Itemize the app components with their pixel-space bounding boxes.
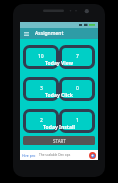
button[interactable]: 2 [23,109,59,133]
staticText: 1 [76,117,79,124]
button[interactable]: 0 [59,77,95,101]
button[interactable]: 3 [23,77,59,101]
button[interactable]: START [23,136,95,145]
staticText: Assignment [35,30,64,37]
staticText: 3 [40,85,43,92]
button[interactable]: 10 [23,45,59,69]
staticText: 10 [38,53,44,60]
staticText: START [53,138,66,144]
staticText: Today Install [43,124,75,131]
staticText: 0 [76,85,79,92]
button[interactable]: 7 [59,45,95,69]
staticText: Hire pro [22,153,36,158]
button[interactable]: 1 [59,109,95,133]
button[interactable]: Menu [20,28,32,39]
staticText: 2 [40,117,43,124]
staticText: The scalable Dev ops [39,153,71,157]
staticText: 7 [76,53,79,60]
staticText: Today View [45,60,73,67]
staticText: Today Click [45,92,73,99]
